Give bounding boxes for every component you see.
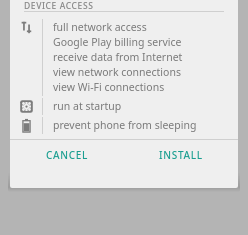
staticText: CANCEL [46,148,89,162]
other: Prevent phone from sleeping [10,116,42,135]
button[interactable]: Network access [10,18,238,97]
staticText: receive data from Internet [53,50,183,64]
button[interactable]: Run at startup [10,97,238,116]
staticText: INSTALL [159,148,203,162]
staticText: view Wi-Fi connections [53,80,165,94]
other: Network access [10,18,42,97]
other: Run at startup [10,97,42,116]
staticText: view network connections [53,65,181,79]
staticText: full network access [53,20,147,34]
staticText: Google Play billing service [53,35,182,49]
button[interactable]: Prevent phone from sleeping [10,116,238,135]
button[interactable]: CANCEL [10,140,124,169]
button[interactable]: INSTALL [124,140,238,169]
staticText: run at startup [53,99,122,113]
staticText: prevent phone from sleeping [53,118,197,132]
staticText: DEVICE ACCESS [24,0,94,11]
